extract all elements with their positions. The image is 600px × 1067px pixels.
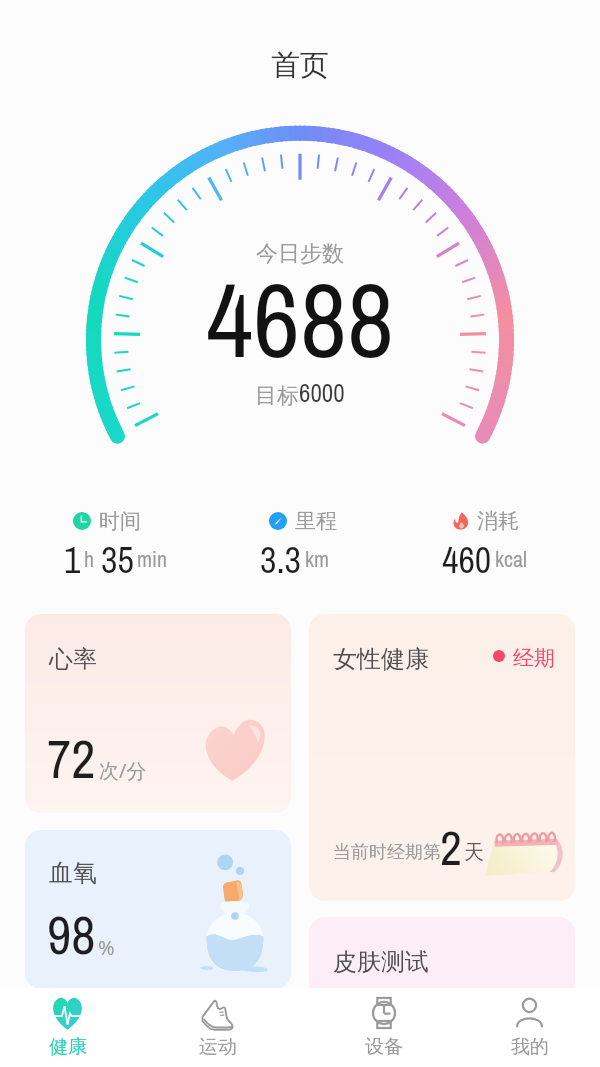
staticText: min [137,544,168,574]
staticText: 心率 [49,644,97,674]
button[interactable]: 血氧 [25,830,291,989]
button[interactable]: 设备 [346,988,421,1067]
staticText: 里程 [295,508,337,534]
staticText: 健康 [49,1035,87,1059]
staticText: 6000 [299,376,345,410]
staticText: 98 [47,899,96,970]
button[interactable]: 运动 [180,988,255,1067]
staticText: 天 [464,840,484,865]
staticText: 时间 [99,508,141,534]
staticText: 1 [64,536,81,576]
staticText: 当前时经期第 [333,841,441,864]
button[interactable]: 皮肤测试 [309,917,575,1067]
staticText: 3.3 [260,536,302,576]
staticText: 次/分 [99,757,147,784]
staticText: 皮肤测试 [333,947,429,977]
staticText: kcal [495,544,528,574]
button[interactable]: 心率 [25,614,291,813]
staticText: 我的 [511,1035,549,1059]
staticText: 血氧 [49,858,97,888]
staticText: h [84,544,95,574]
staticText: 2 [440,815,462,880]
staticText: 经期 [513,645,555,671]
button[interactable]: 我的 [492,988,567,1067]
staticText: 女性健康 [333,644,429,674]
staticText: 运动 [199,1035,237,1059]
staticText: % [98,934,115,961]
staticText: km [305,544,330,574]
staticText: 设备 [365,1035,403,1059]
staticText: 460 [442,536,492,576]
button[interactable]: 女性健康 [309,614,575,901]
staticText: 目标 [255,382,299,410]
staticText: 72 [47,723,96,794]
staticText: 今日步数 [256,240,344,268]
staticText: 首页 [271,47,329,84]
staticText: 35 [101,536,134,576]
staticText: 4688 [206,250,394,389]
staticText: 消耗 [477,508,519,534]
button[interactable]: 健康 [30,988,105,1067]
